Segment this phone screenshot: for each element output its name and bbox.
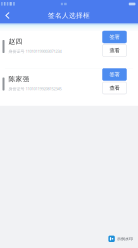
staticText: 查看: [109, 47, 119, 54]
staticText: 签署: [109, 71, 119, 78]
button[interactable]: 查看: [102, 44, 126, 56]
button[interactable]: 签署: [102, 31, 126, 43]
staticText: 赵四: [8, 37, 22, 46]
button[interactable]: 查看: [102, 82, 126, 94]
staticText: 陈家强: [8, 75, 29, 83]
staticText: 查看: [109, 85, 119, 91]
staticText: 签名人选择框: [48, 11, 90, 20]
button[interactable]: Back: [0, 8, 15, 23]
staticText: 身份证号 110101199208152345: [8, 86, 61, 91]
staticText: 签署: [109, 34, 119, 40]
staticText: 身份证号 110101199003071234: [8, 48, 61, 54]
staticText: 示例水印: [117, 236, 133, 241]
button[interactable]: 签署: [102, 68, 126, 80]
